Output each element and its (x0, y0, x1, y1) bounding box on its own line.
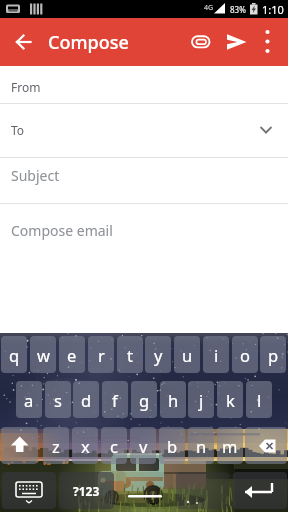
button[interactable]: p (260, 336, 286, 373)
button[interactable]: y (145, 336, 171, 373)
button[interactable]: l (246, 381, 272, 418)
staticText: a (24, 389, 34, 411)
staticText: n (196, 435, 207, 457)
staticText: l (257, 389, 262, 411)
button[interactable] (1, 427, 38, 464)
staticText: ?123 (73, 483, 100, 499)
staticText: z (52, 435, 60, 457)
button[interactable]: q (1, 336, 27, 373)
staticText: y (154, 344, 163, 366)
staticText: c (110, 435, 118, 457)
button[interactable] (220, 26, 252, 58)
button[interactable] (233, 472, 287, 509)
staticText: 1:10 (262, 2, 284, 17)
button[interactable]: m (217, 427, 243, 464)
staticText: x (81, 435, 90, 457)
staticText: f (112, 389, 118, 411)
button[interactable] (6, 25, 40, 59)
button[interactable]: z (43, 427, 69, 464)
button[interactable]: r (88, 336, 114, 373)
button[interactable]: h (160, 381, 186, 418)
button[interactable]: x (72, 427, 98, 464)
button[interactable]: o (232, 336, 258, 373)
button[interactable] (176, 472, 229, 509)
staticText: Compose email (11, 221, 113, 240)
staticText: r (98, 344, 105, 366)
button[interactable]: To (0, 121, 288, 139)
button[interactable]: d (73, 381, 99, 418)
staticText: t (127, 344, 133, 366)
staticText: 4G (204, 3, 214, 13)
button[interactable]: g (131, 381, 157, 418)
staticText: d (81, 389, 92, 411)
button[interactable]: Subject (0, 166, 288, 185)
button[interactable]: a (16, 381, 42, 418)
button[interactable] (116, 472, 173, 509)
staticText: v (139, 435, 148, 457)
staticText: w (37, 344, 50, 366)
button[interactable] (245, 427, 287, 464)
button[interactable]: e (59, 336, 85, 373)
staticText: j (199, 389, 204, 411)
button[interactable]: w (30, 336, 56, 373)
staticText: k (226, 389, 235, 411)
button[interactable]: u (174, 336, 200, 373)
staticText: e (67, 344, 77, 366)
staticText: From (11, 79, 41, 95)
button[interactable]: c (101, 427, 127, 464)
button[interactable] (185, 26, 217, 58)
staticText: 83% (230, 4, 246, 15)
button[interactable]: ?123 (59, 472, 114, 509)
button[interactable]: Compose email (0, 221, 288, 240)
button[interactable] (2, 472, 56, 509)
staticText: Compose (48, 30, 129, 55)
button[interactable]: k (217, 381, 243, 418)
staticText: m (222, 435, 238, 457)
button[interactable]: b (159, 427, 185, 464)
staticText: g (139, 389, 150, 411)
staticText: q (9, 344, 20, 366)
staticText: To (11, 122, 25, 138)
staticText: s (54, 389, 62, 411)
button[interactable]: n (188, 427, 214, 464)
button[interactable]: i (203, 336, 229, 373)
button[interactable] (254, 26, 284, 58)
staticText: b (167, 435, 178, 457)
staticText: i (214, 344, 219, 366)
staticText: h (168, 389, 179, 411)
button[interactable]: f (102, 381, 128, 418)
button[interactable]: From (0, 78, 288, 96)
button[interactable]: v (130, 427, 156, 464)
staticText: u (182, 344, 193, 366)
button[interactable]: t (117, 336, 143, 373)
staticText: p (268, 344, 279, 366)
button[interactable]: j (188, 381, 214, 418)
staticText: o (240, 344, 250, 366)
staticText: Subject (11, 166, 60, 185)
button[interactable]: s (45, 381, 71, 418)
